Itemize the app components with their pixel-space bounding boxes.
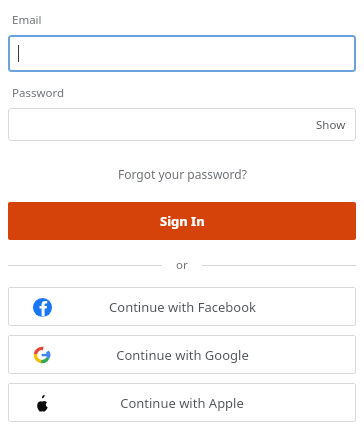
button[interactable]: Show [8,108,356,141]
staticText: or [176,257,188,273]
button[interactable]: Forgot your password? [110,163,255,185]
staticText: Continue with Facebook [109,298,256,316]
staticText: Show [316,117,346,133]
staticText: Continue with Apple [120,394,244,412]
other: Google [33,346,51,364]
staticText: Forgot your password? [118,166,247,182]
button[interactable]: Show [306,113,356,137]
staticText: Sign In [160,212,205,230]
button[interactable]: Continue with Facebook [8,287,356,326]
button[interactable]: Continue with Apple [8,383,356,422]
button[interactable] [8,35,356,72]
button[interactable]: Sign In [8,202,356,240]
staticText: Email [12,12,42,28]
other: Apple [33,394,52,413]
staticText: Continue with Google [116,346,249,364]
staticText: Password [12,85,65,101]
other: Facebook [33,298,52,317]
button[interactable]: Continue with Google [8,335,356,374]
